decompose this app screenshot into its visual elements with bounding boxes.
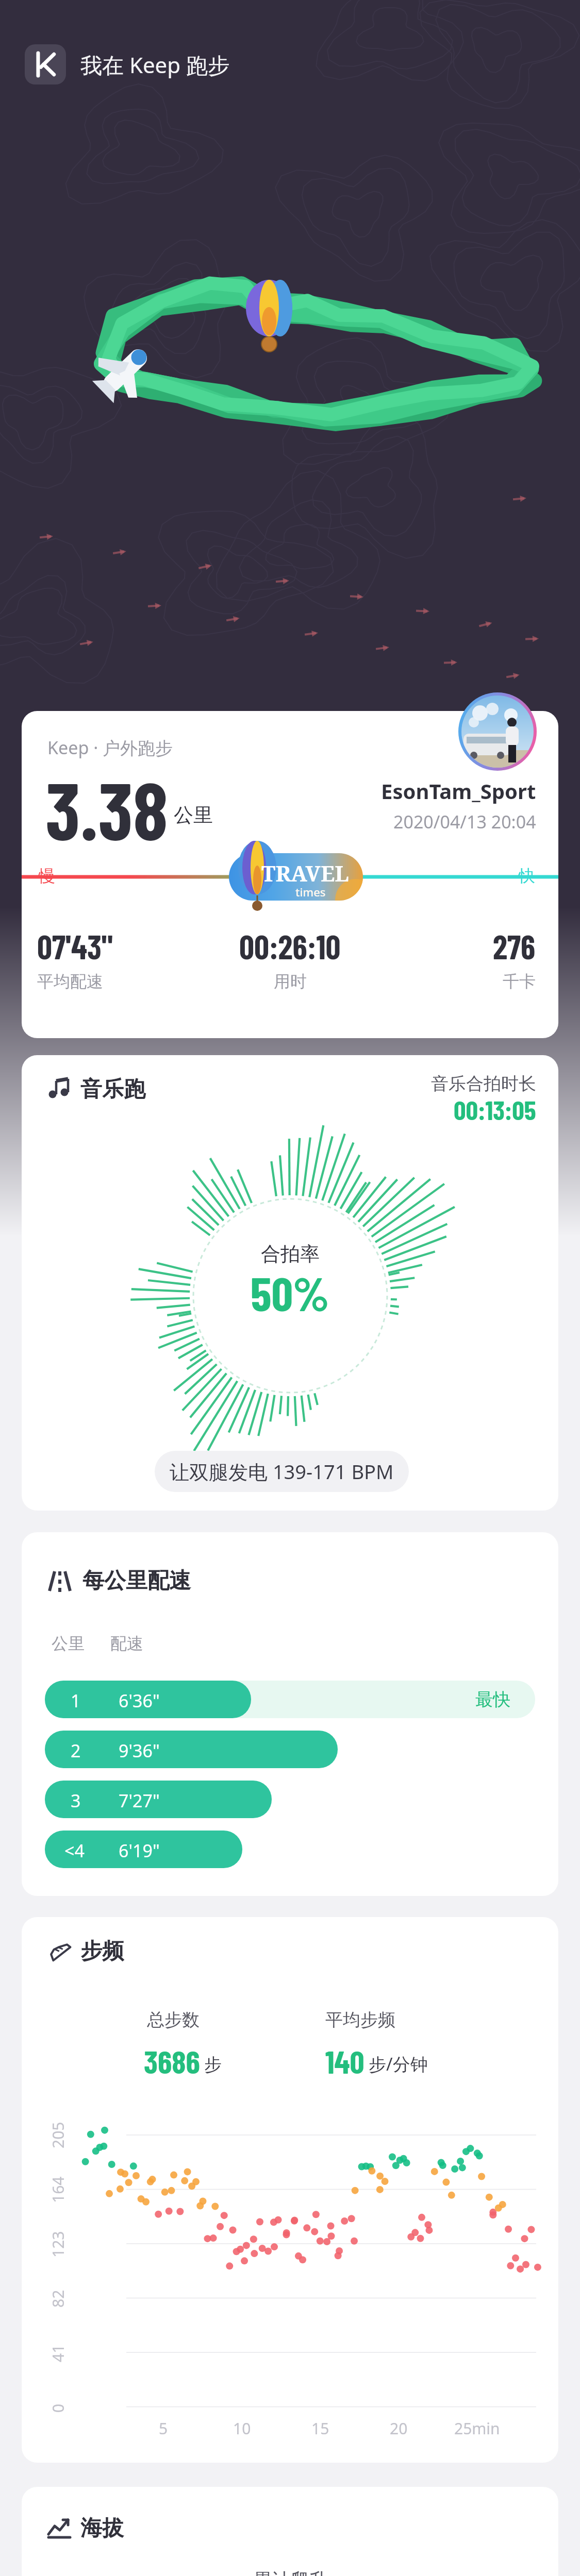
staticText: 快 xyxy=(519,866,535,886)
staticText: 3686 xyxy=(144,2042,200,2080)
staticText: 82 xyxy=(47,2290,69,2308)
staticText: 每公里配速 xyxy=(82,1567,191,1595)
staticText: 2 xyxy=(71,1739,81,1762)
staticText: 配速 xyxy=(110,1633,143,1654)
staticText: 步频 xyxy=(80,1938,124,1965)
staticText: 9'36" xyxy=(119,1739,160,1762)
staticText: 25min xyxy=(454,2418,500,2438)
staticText: 00:13:05 xyxy=(454,1093,536,1125)
staticText: 步/分钟 xyxy=(369,2052,428,2076)
staticText: 我在 Keep 跑步 xyxy=(80,50,230,79)
staticText: times xyxy=(295,884,326,900)
staticText: 音乐跑 xyxy=(80,1076,145,1103)
staticText: 6'19" xyxy=(119,1839,160,1862)
staticText: 205 xyxy=(47,2122,69,2148)
staticText: 140 xyxy=(325,2042,364,2080)
button[interactable]: 1 xyxy=(45,1681,251,1718)
staticText: <4 xyxy=(64,1839,85,1862)
staticText: 0 xyxy=(47,2403,69,2413)
staticText: 123 xyxy=(47,2231,69,2258)
button[interactable]: 让双腿发电 139-171 BPM xyxy=(155,1451,409,1492)
staticText: Keep · 户外跑步 xyxy=(47,736,173,759)
staticText: 让双腿发电 139-171 BPM xyxy=(170,1458,394,1485)
staticText: 公里 xyxy=(174,803,213,827)
staticText: 平均步频 xyxy=(325,2009,395,2031)
button[interactable]: <4 xyxy=(45,1831,242,1868)
staticText: 步 xyxy=(204,2054,222,2076)
staticText: EsonTam_Sport xyxy=(381,777,536,805)
staticText: 音乐合拍时长 xyxy=(431,1073,536,1095)
staticText: 总步数 xyxy=(147,2009,200,2031)
button[interactable]: 3 xyxy=(45,1781,272,1818)
staticText: 3.38 xyxy=(45,760,168,856)
button[interactable] xyxy=(458,692,537,771)
staticText: 最快 xyxy=(475,1688,510,1710)
staticText: 00:26:10 xyxy=(239,926,341,966)
staticText: 7'27" xyxy=(119,1789,160,1812)
staticText: 千卡 xyxy=(503,971,536,992)
button[interactable]: 2 xyxy=(45,1731,338,1768)
staticText: 15 xyxy=(311,2418,329,2438)
staticText: 164 xyxy=(47,2176,69,2203)
staticText: 20 xyxy=(390,2418,408,2438)
staticText: 累计爬升 xyxy=(253,2568,327,2576)
staticText: 6'36" xyxy=(119,1689,160,1713)
staticText: 5 xyxy=(159,2418,168,2438)
staticText: 平均配速 xyxy=(37,971,103,992)
staticText: 2020/04/13 20:04 xyxy=(393,810,536,834)
staticText: 10 xyxy=(233,2418,251,2438)
staticText: 3 xyxy=(71,1789,81,1812)
staticText: 合拍率 xyxy=(261,1242,320,1266)
staticText: 慢 xyxy=(39,866,55,886)
staticText: 50% xyxy=(251,1264,329,1320)
staticText: 276 xyxy=(493,926,536,966)
staticText: 海拔 xyxy=(80,2515,124,2542)
staticText: 公里 xyxy=(52,1633,85,1654)
button[interactable]: 我在 Keep 跑步 xyxy=(25,44,230,84)
staticText: TRAVEL xyxy=(261,858,349,888)
staticText: 41 xyxy=(47,2344,69,2362)
staticText: 1 xyxy=(71,1689,81,1713)
staticText: 07'43" xyxy=(37,926,113,966)
staticText: 用时 xyxy=(274,971,307,992)
